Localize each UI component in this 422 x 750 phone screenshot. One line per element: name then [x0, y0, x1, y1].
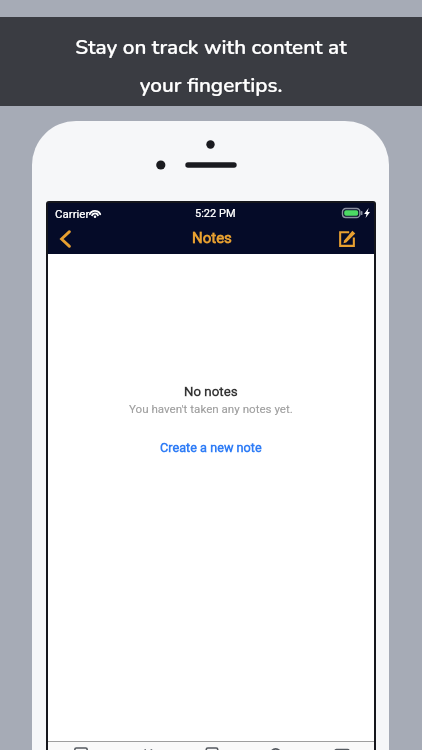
staticText: No notes	[184, 384, 238, 400]
staticText: Notes	[192, 229, 232, 247]
button[interactable]: Back	[48, 223, 83, 254]
staticText: Stay on track with content at your finge…	[75, 33, 347, 99]
staticText: 5:22 PM	[195, 207, 236, 220]
button[interactable]: Library	[114, 742, 179, 750]
button[interactable]: Search	[244, 742, 309, 750]
staticText: You haven't taken any notes yet.	[129, 402, 293, 416]
button[interactable]: Notes	[179, 742, 244, 750]
staticText: Create a new note	[160, 440, 262, 455]
staticText: Carrier	[55, 207, 90, 220]
button[interactable]: Compose new note	[320, 223, 374, 254]
button[interactable]: More	[309, 742, 374, 750]
button[interactable]: Today	[48, 742, 114, 750]
button[interactable]: Create a new note	[154, 437, 268, 458]
